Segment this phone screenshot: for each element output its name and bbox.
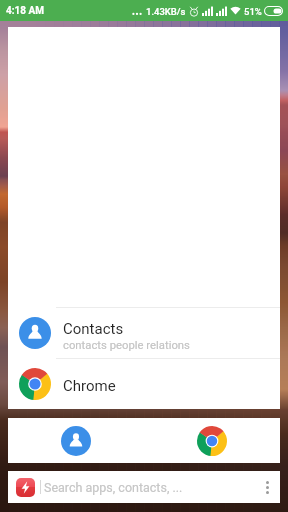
staticText: 1.43KB/s <box>146 6 186 17</box>
button[interactable]: Contacts <box>8 308 280 358</box>
staticText: 51% <box>244 6 262 17</box>
staticText: Contacts <box>63 320 124 338</box>
button[interactable]: Contacts <box>8 418 144 463</box>
button[interactable]: Chrome <box>8 359 280 409</box>
staticText: Chrome <box>63 377 116 395</box>
staticText: Search apps, contacts, ... <box>44 480 183 495</box>
staticText: 4:18 AM <box>6 5 45 17</box>
staticText: contacts people relations <box>63 339 190 352</box>
button[interactable]: Search apps, contacts, ... <box>8 471 280 503</box>
button[interactable]: More options <box>254 471 280 503</box>
button[interactable]: Chrome <box>144 418 280 463</box>
